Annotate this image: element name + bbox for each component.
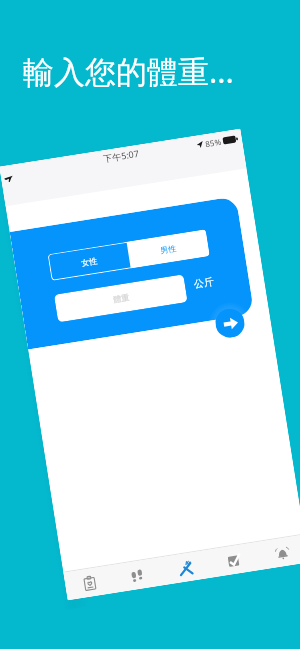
button[interactable]: Tasks bbox=[208, 542, 260, 578]
staticText: 85% bbox=[202, 136, 224, 150]
staticText: 輸入您的體重... bbox=[23, 50, 234, 92]
staticText: 男性 bbox=[159, 243, 177, 256]
button[interactable]: Next bbox=[213, 307, 247, 340]
button[interactable]: Alarms bbox=[256, 535, 300, 570]
staticText: 下午5:07 bbox=[102, 147, 140, 164]
button[interactable]: Meals bbox=[159, 550, 212, 585]
staticText: 女性 bbox=[80, 256, 98, 268]
button[interactable]: Steps bbox=[111, 558, 164, 593]
staticText: 公斤 bbox=[193, 275, 215, 291]
staticText: 體重 bbox=[113, 292, 130, 304]
button[interactable]: Records bbox=[63, 565, 115, 600]
button[interactable]: 體重 bbox=[54, 274, 188, 322]
button[interactable]: 男性 bbox=[126, 229, 210, 268]
button[interactable]: 女性 bbox=[47, 242, 131, 281]
